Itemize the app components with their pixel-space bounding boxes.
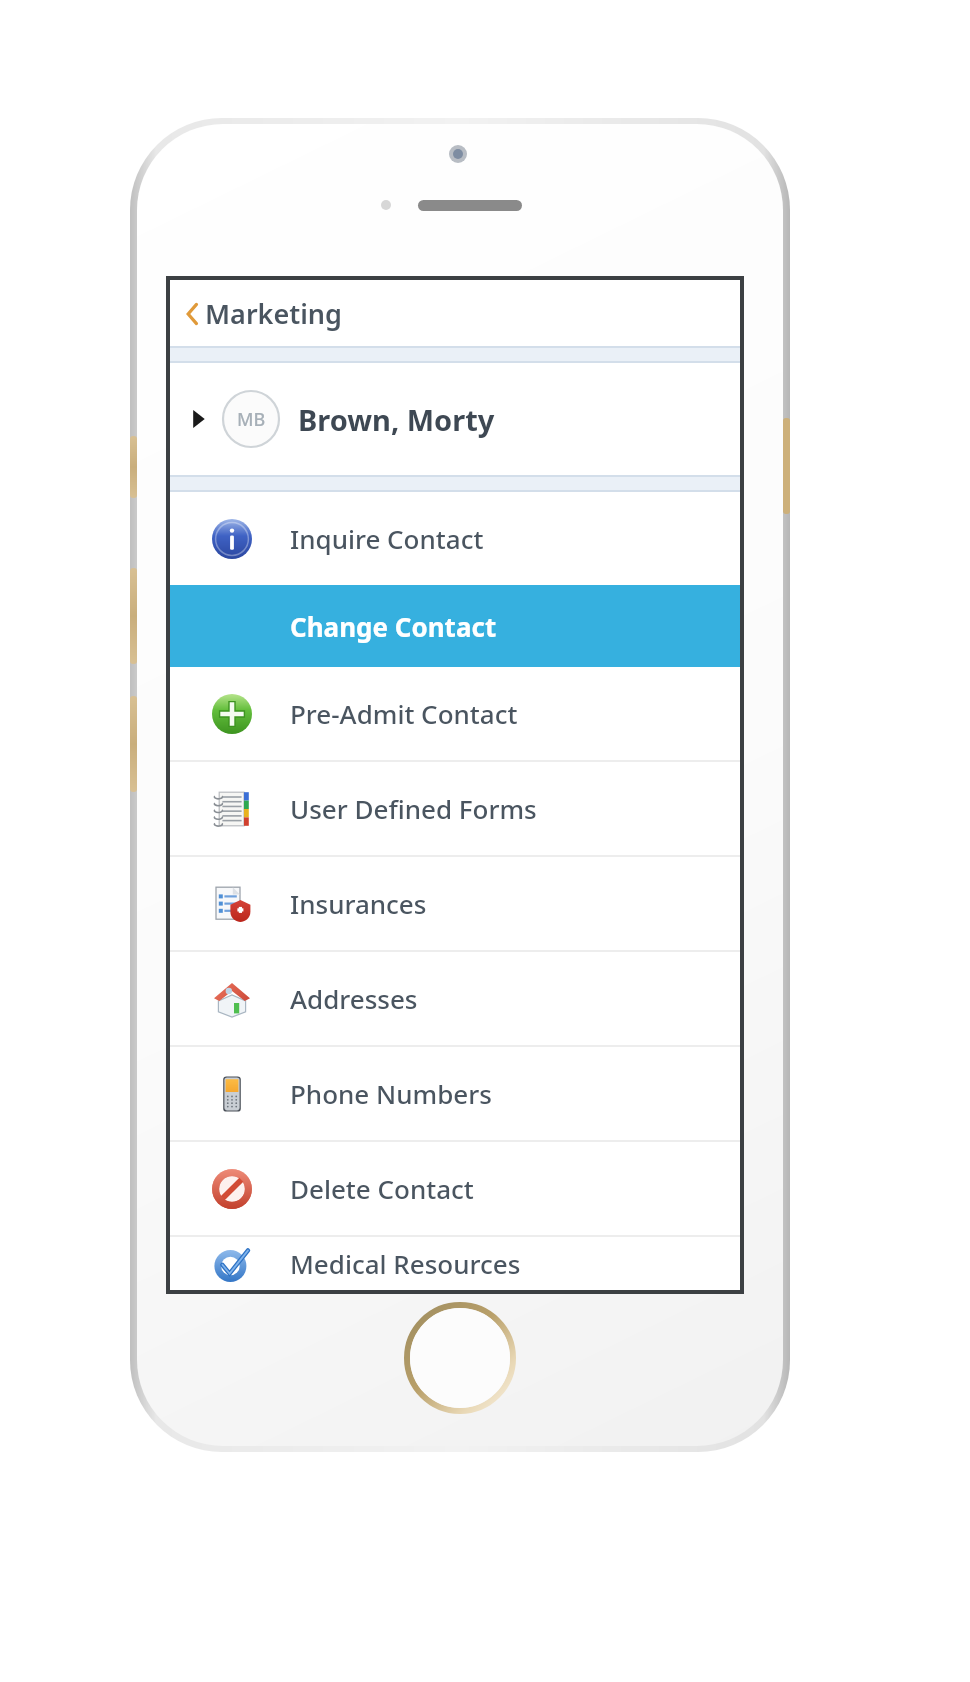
staticText: Pre-Admit Contact <box>290 696 518 731</box>
staticText: Change Contact <box>290 609 497 644</box>
button[interactable]: Phone Numbers <box>170 1047 740 1140</box>
staticText: Medical Resources <box>290 1246 521 1281</box>
button[interactable]: Delete Contact <box>170 1142 740 1235</box>
button[interactable]: Change Contact <box>170 585 740 667</box>
staticText: User Defined Forms <box>290 791 537 826</box>
staticText: Addresses <box>290 981 418 1016</box>
button[interactable]: Addresses <box>170 952 740 1045</box>
button[interactable]: Medical Resources <box>170 1237 740 1290</box>
button[interactable]: User Defined Forms <box>170 762 740 855</box>
staticText: Brown, Morty <box>298 400 495 439</box>
button[interactable]: Inquire Contact <box>170 492 740 585</box>
other: Expand <box>186 405 210 433</box>
button[interactable]: Marketing <box>170 280 740 346</box>
staticText: Marketing <box>205 295 342 332</box>
staticText: Inquire Contact <box>290 521 484 556</box>
staticText: Insurances <box>290 886 427 921</box>
staticText: Delete Contact <box>290 1171 474 1206</box>
staticText: Phone Numbers <box>290 1076 492 1111</box>
button[interactable]: Insurances <box>170 857 740 950</box>
button[interactable]: Expand <box>170 363 740 475</box>
button[interactable]: Pre-Admit Contact <box>170 667 740 760</box>
staticText: MB <box>237 407 266 432</box>
